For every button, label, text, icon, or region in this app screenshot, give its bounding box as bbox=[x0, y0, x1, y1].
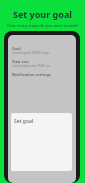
staticText: Set your goal bbox=[13, 8, 72, 20]
button[interactable]: Step size bbox=[8, 57, 76, 70]
staticText: Current step size: 75.00 cm bbox=[12, 64, 51, 68]
staticText: Set goal bbox=[14, 118, 34, 125]
button[interactable]: Goal bbox=[8, 44, 76, 57]
staticText: Step size bbox=[12, 59, 29, 64]
staticText: Notification settings bbox=[12, 72, 51, 77]
staticText: Goal bbox=[12, 46, 21, 51]
staticText: Current goal: 10,000 steps bbox=[12, 51, 49, 55]
staticText: How many steps do you want to walk? bbox=[7, 23, 79, 28]
button[interactable]: Notification settings bbox=[8, 70, 76, 79]
